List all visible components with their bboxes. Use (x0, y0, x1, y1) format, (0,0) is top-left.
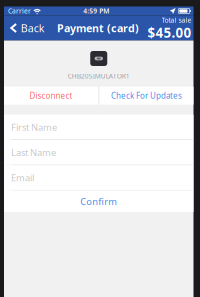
button[interactable]: Back (4, 15, 51, 40)
button[interactable]: Check For Updates (100, 87, 193, 105)
button[interactable]: Confirm (4, 191, 193, 212)
button[interactable]: Disconnect (4, 87, 98, 105)
staticText: Back (21, 21, 45, 35)
staticText: Email (11, 171, 34, 184)
staticText: 4:59 PM (83, 7, 109, 15)
staticText: $45.00 (147, 24, 191, 41)
staticText: First Name (11, 121, 57, 133)
staticText: Check For Updates (111, 90, 182, 101)
staticText: Payment (card) (57, 21, 139, 35)
staticText: Total sale (161, 16, 191, 25)
staticText: Last Name (11, 146, 56, 158)
staticText: Carrier (8, 7, 31, 15)
staticText: CHB20SIMULATOR1 (68, 72, 130, 80)
staticText: Confirm (80, 195, 117, 207)
staticText: Disconnect (29, 90, 72, 101)
